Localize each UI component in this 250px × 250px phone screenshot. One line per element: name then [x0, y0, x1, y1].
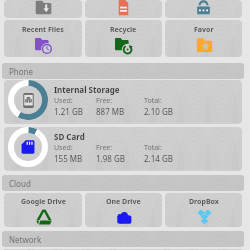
staticText: Google Drive [21, 197, 66, 207]
staticText: Free: [96, 96, 113, 106]
button[interactable]: Document [85, 0, 162, 18]
staticText: Phone [9, 66, 34, 77]
staticText: One Drive [106, 197, 141, 207]
staticText: Total: [144, 96, 162, 106]
button[interactable]: Network [2, 231, 244, 247]
staticText: 1.21 GB [54, 106, 83, 117]
staticText: Recycle [110, 25, 137, 35]
button[interactable]: Recent Files [4, 20, 82, 57]
staticText: Used: [54, 143, 73, 153]
button[interactable]: Phone [2, 63, 244, 79]
button[interactable]: Internal Storage [4, 80, 242, 124]
button[interactable]: Google Drive [4, 193, 82, 227]
button[interactable]: Safe [165, 0, 242, 18]
staticText: 2.10 GB [144, 106, 173, 117]
button[interactable]: DropBox [165, 193, 242, 227]
staticText: 2.14 GB [144, 153, 173, 164]
staticText: Used: [54, 96, 73, 106]
staticText: Internal Storage [54, 84, 120, 95]
staticText: Free: [96, 143, 113, 153]
button[interactable]: One Drive [85, 193, 162, 227]
staticText: 1.98 GB [96, 153, 125, 164]
staticText: Network [9, 234, 42, 245]
staticText: 887 MB [96, 106, 125, 117]
staticText: Favor [194, 25, 214, 35]
staticText: SD Card [54, 131, 85, 142]
button[interactable]: SD Card [4, 127, 242, 171]
button[interactable]: Cloud [2, 175, 244, 191]
staticText: Cloud [9, 178, 31, 189]
staticText: 155 MB [54, 153, 83, 164]
staticText: Total: [144, 143, 162, 153]
button[interactable]: Recycle [85, 20, 162, 57]
staticText: DropBox [189, 197, 219, 207]
button[interactable]: Favor [165, 20, 242, 57]
button[interactable]: Download [4, 0, 82, 18]
staticText: Recent Files [22, 25, 64, 35]
